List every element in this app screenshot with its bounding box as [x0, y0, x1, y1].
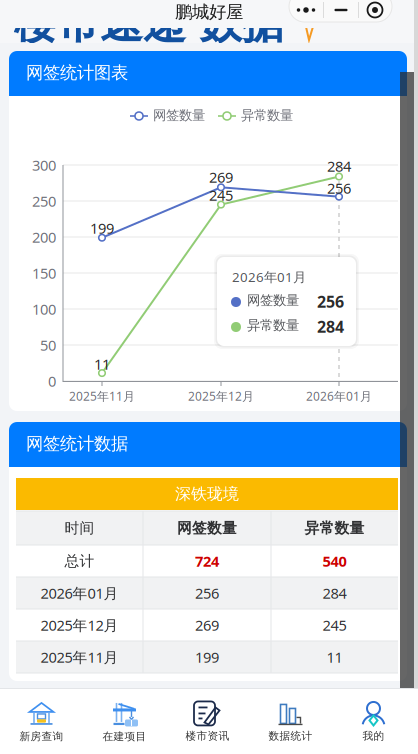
- staticText: 100: [32, 299, 56, 319]
- staticText: 2025年12月: [188, 388, 254, 404]
- staticText: 新房查询: [19, 730, 63, 743]
- staticText: 2025年11月: [40, 647, 118, 667]
- button[interactable]: 楼市资讯: [166, 689, 249, 753]
- staticText: 540: [322, 551, 346, 571]
- staticText: 网签统计数据: [26, 433, 128, 454]
- staticText: 2025年12月: [40, 615, 118, 635]
- staticText: 2026年01月: [232, 268, 306, 286]
- staticText: 楼市资讯: [185, 729, 229, 742]
- button[interactable]: 新房查询: [0, 689, 83, 753]
- button[interactable]: 数据统计: [249, 689, 332, 753]
- staticText: 199: [195, 647, 219, 667]
- staticText: 时间: [64, 519, 94, 537]
- staticText: 总计: [64, 552, 94, 570]
- staticText: 199: [90, 218, 114, 238]
- staticText: 异常数量: [241, 107, 293, 123]
- staticText: 269: [195, 615, 219, 635]
- staticText: 250: [32, 191, 56, 211]
- staticText: 284: [317, 316, 344, 337]
- button[interactable]: 我的: [332, 689, 415, 753]
- staticText: 网签数量: [177, 519, 237, 537]
- staticText: 异常数量: [304, 519, 364, 537]
- staticText: 异常数量: [247, 317, 299, 333]
- staticText: 鹏城好屋: [175, 1, 243, 23]
- staticText: 深铁珑境: [175, 484, 239, 504]
- button[interactable]: More: [289, 0, 323, 21]
- staticText: 2025年11月: [69, 388, 135, 404]
- staticText: 2026年01月: [40, 583, 118, 603]
- staticText: 0: [48, 371, 56, 391]
- staticText: 245: [209, 185, 233, 205]
- staticText: 11: [94, 354, 110, 374]
- staticText: 256: [195, 583, 219, 603]
- staticText: 245: [322, 615, 346, 635]
- staticText: 200: [32, 227, 56, 247]
- staticText: 256: [327, 178, 351, 198]
- staticText: 284: [327, 156, 351, 176]
- staticText: 在建项目: [102, 730, 146, 743]
- button[interactable]: Close: [360, 0, 390, 21]
- button[interactable]: 在建项目: [83, 689, 166, 753]
- staticText: 300: [32, 155, 56, 175]
- staticText: 50: [40, 335, 56, 355]
- staticText: 11: [326, 647, 342, 667]
- staticText: 256: [317, 291, 344, 312]
- staticText: 724: [195, 551, 219, 571]
- staticText: 2026年01月: [306, 388, 372, 404]
- staticText: 我的: [362, 729, 384, 742]
- staticText: 网签数量: [153, 107, 205, 123]
- staticText: 楼市速递 数据: [14, 0, 285, 49]
- staticText: 网签统计图表: [26, 62, 128, 83]
- staticText: 网签数量: [247, 292, 299, 308]
- staticText: 150: [32, 263, 56, 283]
- staticText: 284: [322, 583, 346, 603]
- staticText: 269: [209, 167, 233, 187]
- button[interactable]: Minimise: [325, 0, 357, 21]
- staticText: 数据统计: [268, 729, 312, 742]
